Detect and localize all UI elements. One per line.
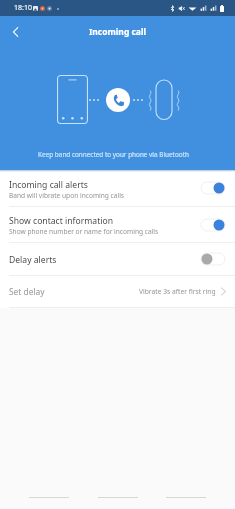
staticText: Delay alerts (9, 254, 57, 266)
staticText: Show contact information (9, 215, 113, 227)
staticText: Set delay (9, 286, 45, 297)
staticText: 18:10 (14, 3, 32, 13)
staticText: Vibrate 3s after first ring (139, 287, 216, 296)
button[interactable]: Back (0, 17, 30, 47)
staticText: Band will vibrate upon incoming calls (9, 191, 125, 200)
button[interactable]: Incoming call alerts (0, 170, 235, 206)
button[interactable]: Navigation (98, 489, 138, 505)
button[interactable]: Navigation (166, 489, 206, 505)
staticText: Show phone number or name for incoming c… (9, 227, 159, 236)
staticText: Keep band connected to your phone via Bl… (0, 150, 231, 159)
button[interactable]: Show contact information (0, 207, 235, 242)
button[interactable]: Delay alerts (0, 243, 235, 275)
button[interactable]: Set delay (0, 276, 235, 307)
staticText: Incoming call (89, 26, 147, 38)
staticText: Incoming call alerts (9, 179, 88, 191)
button[interactable]: Navigation (29, 489, 69, 505)
